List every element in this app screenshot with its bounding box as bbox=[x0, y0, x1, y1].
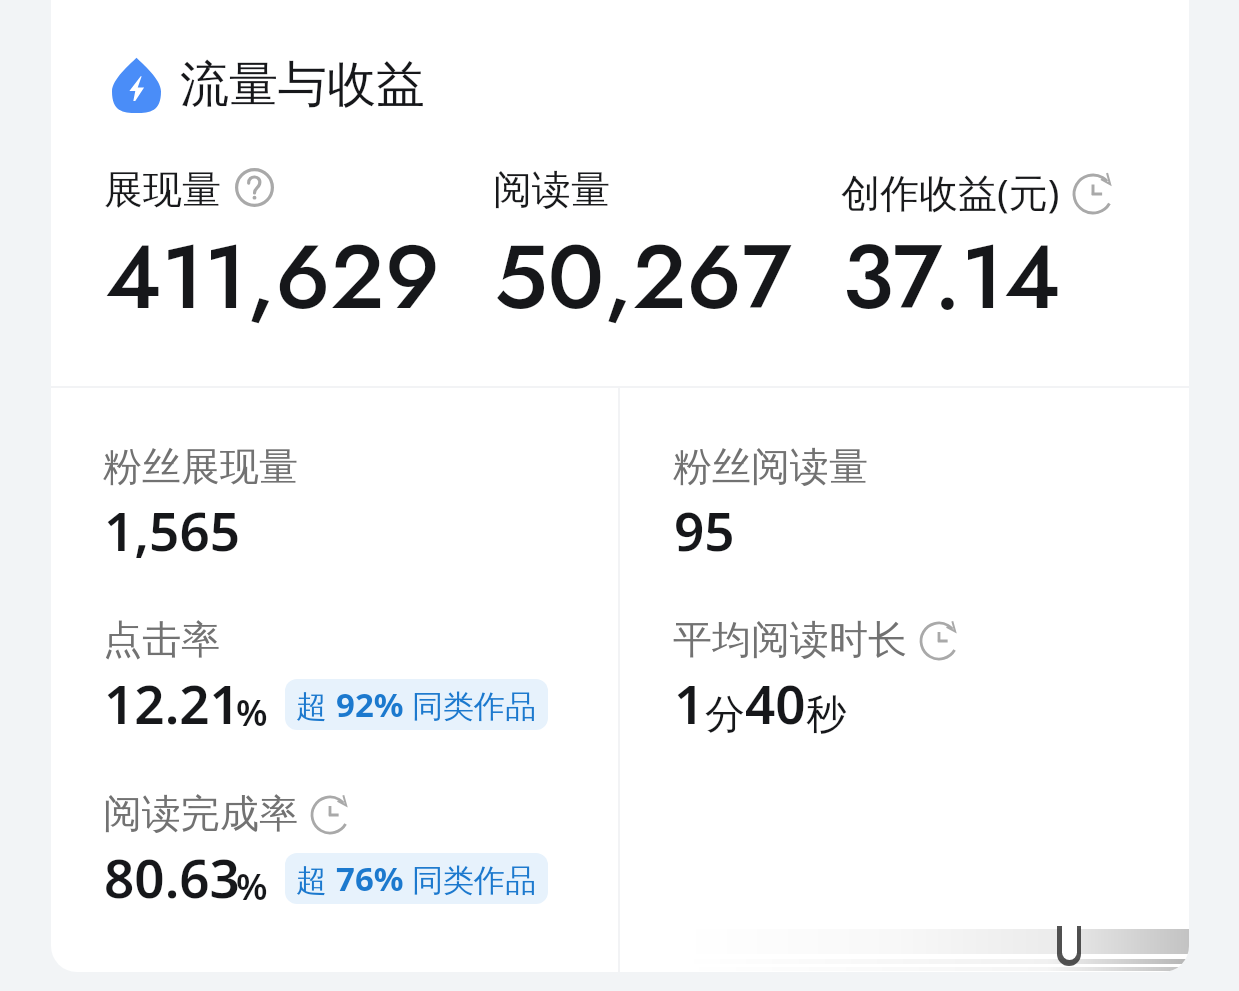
button[interactable]: 粉丝展现量 bbox=[103, 442, 298, 491]
staticText: 50,267 bbox=[494, 212, 792, 342]
staticText: 超 bbox=[296, 684, 336, 726]
staticText: 同类作品 bbox=[404, 858, 537, 900]
other: Updated bbox=[1072, 173, 1114, 215]
staticText: 点击率 bbox=[103, 615, 220, 664]
staticText: 展现量 bbox=[104, 165, 221, 214]
staticText: 创作收益(元) bbox=[841, 165, 1060, 218]
staticText: 95 bbox=[674, 494, 735, 566]
staticText: 76% bbox=[336, 856, 404, 901]
button[interactable]: 展现量 bbox=[104, 165, 274, 214]
staticText: % bbox=[236, 862, 268, 911]
staticText: 同类作品 bbox=[404, 684, 537, 726]
button[interactable]: 流量与收益 bbox=[112, 54, 425, 116]
button[interactable]: 创作收益(元) bbox=[841, 165, 1114, 218]
staticText: 分 bbox=[705, 689, 745, 739]
staticText: 粉丝阅读量 bbox=[673, 442, 868, 491]
staticText: 1,565 bbox=[104, 494, 241, 566]
staticText: 阅读完成率 bbox=[103, 789, 298, 838]
staticText: 超 bbox=[296, 858, 336, 900]
button[interactable]: 点击率 bbox=[103, 615, 220, 664]
staticText: 平均阅读时长 bbox=[673, 615, 907, 664]
staticText: 92% bbox=[336, 682, 404, 727]
staticText: 80.63 bbox=[104, 841, 240, 913]
button[interactable]: 平均阅读时长 bbox=[673, 615, 959, 664]
button[interactable]: 粉丝阅读量 bbox=[673, 442, 868, 491]
button[interactable]: 阅读量 bbox=[493, 165, 610, 214]
other: Updated bbox=[310, 795, 350, 835]
staticText: 12.21 bbox=[104, 667, 240, 739]
staticText: 40 bbox=[745, 667, 806, 739]
staticText: 37.14 bbox=[842, 212, 1061, 342]
button[interactable]: 阅读完成率 bbox=[103, 789, 350, 838]
staticText: 411,629 bbox=[105, 212, 440, 342]
button[interactable]: 超 bbox=[285, 853, 548, 904]
other: Updated bbox=[919, 621, 959, 661]
staticText: 粉丝展现量 bbox=[103, 442, 298, 491]
staticText: 1 bbox=[674, 667, 705, 739]
staticText: % bbox=[236, 688, 268, 737]
staticText: 流量与收益 bbox=[180, 54, 425, 116]
staticText: 阅读量 bbox=[493, 165, 610, 214]
button[interactable]: 超 bbox=[285, 679, 548, 730]
staticText: 秒 bbox=[806, 689, 846, 739]
other: Help bbox=[235, 168, 274, 207]
